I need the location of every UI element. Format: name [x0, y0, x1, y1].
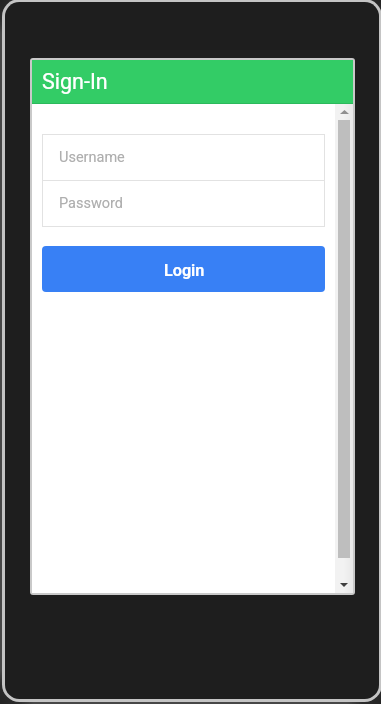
staticText: Sign-In: [42, 69, 108, 94]
staticText: Username: [59, 149, 125, 166]
button[interactable]: Scroll down: [335, 576, 353, 593]
staticText: Login: [164, 261, 205, 280]
button[interactable]: Password: [42, 181, 325, 226]
staticText: Password: [59, 195, 124, 212]
button[interactable]: Scroll up: [335, 104, 353, 120]
button[interactable]: Login: [42, 246, 325, 292]
button[interactable]: Username: [42, 135, 325, 180]
